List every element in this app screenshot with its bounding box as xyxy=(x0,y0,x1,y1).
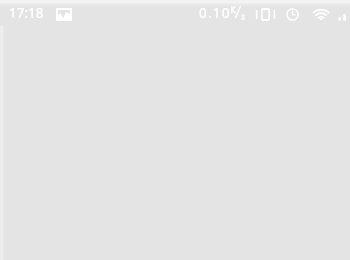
staticText: 0.10 xyxy=(199,4,231,22)
other: Ringer set to vibrate xyxy=(255,8,276,21)
other: Mobile signal strength xyxy=(338,8,347,21)
other: Screenshot captured xyxy=(56,8,72,21)
other: Wi-Fi connected xyxy=(310,8,332,21)
other: Alarm set xyxy=(286,8,299,21)
other: Kilobytes per second xyxy=(231,6,246,20)
staticText: 17:18 xyxy=(9,4,44,22)
